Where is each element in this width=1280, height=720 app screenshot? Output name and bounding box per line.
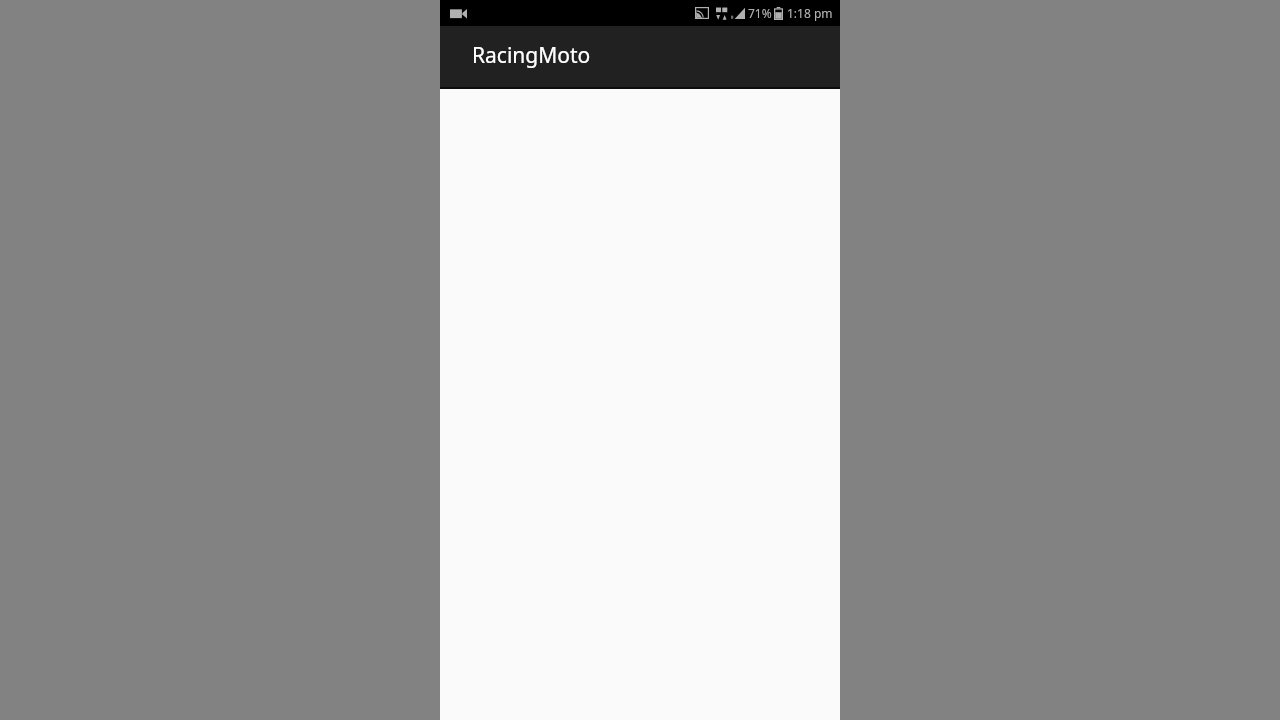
other: Mobile signal — [731, 7, 745, 19]
staticText: 1:18 pm — [787, 5, 833, 21]
other: Cast — [695, 7, 709, 19]
staticText: 71% — [748, 5, 772, 21]
button[interactable]: RacingMoto — [440, 26, 840, 87]
staticText: RacingMoto — [472, 41, 591, 70]
other: Screen recording — [450, 8, 467, 19]
other: 4G — [716, 7, 728, 20]
other: Battery 71 percent — [774, 7, 783, 20]
